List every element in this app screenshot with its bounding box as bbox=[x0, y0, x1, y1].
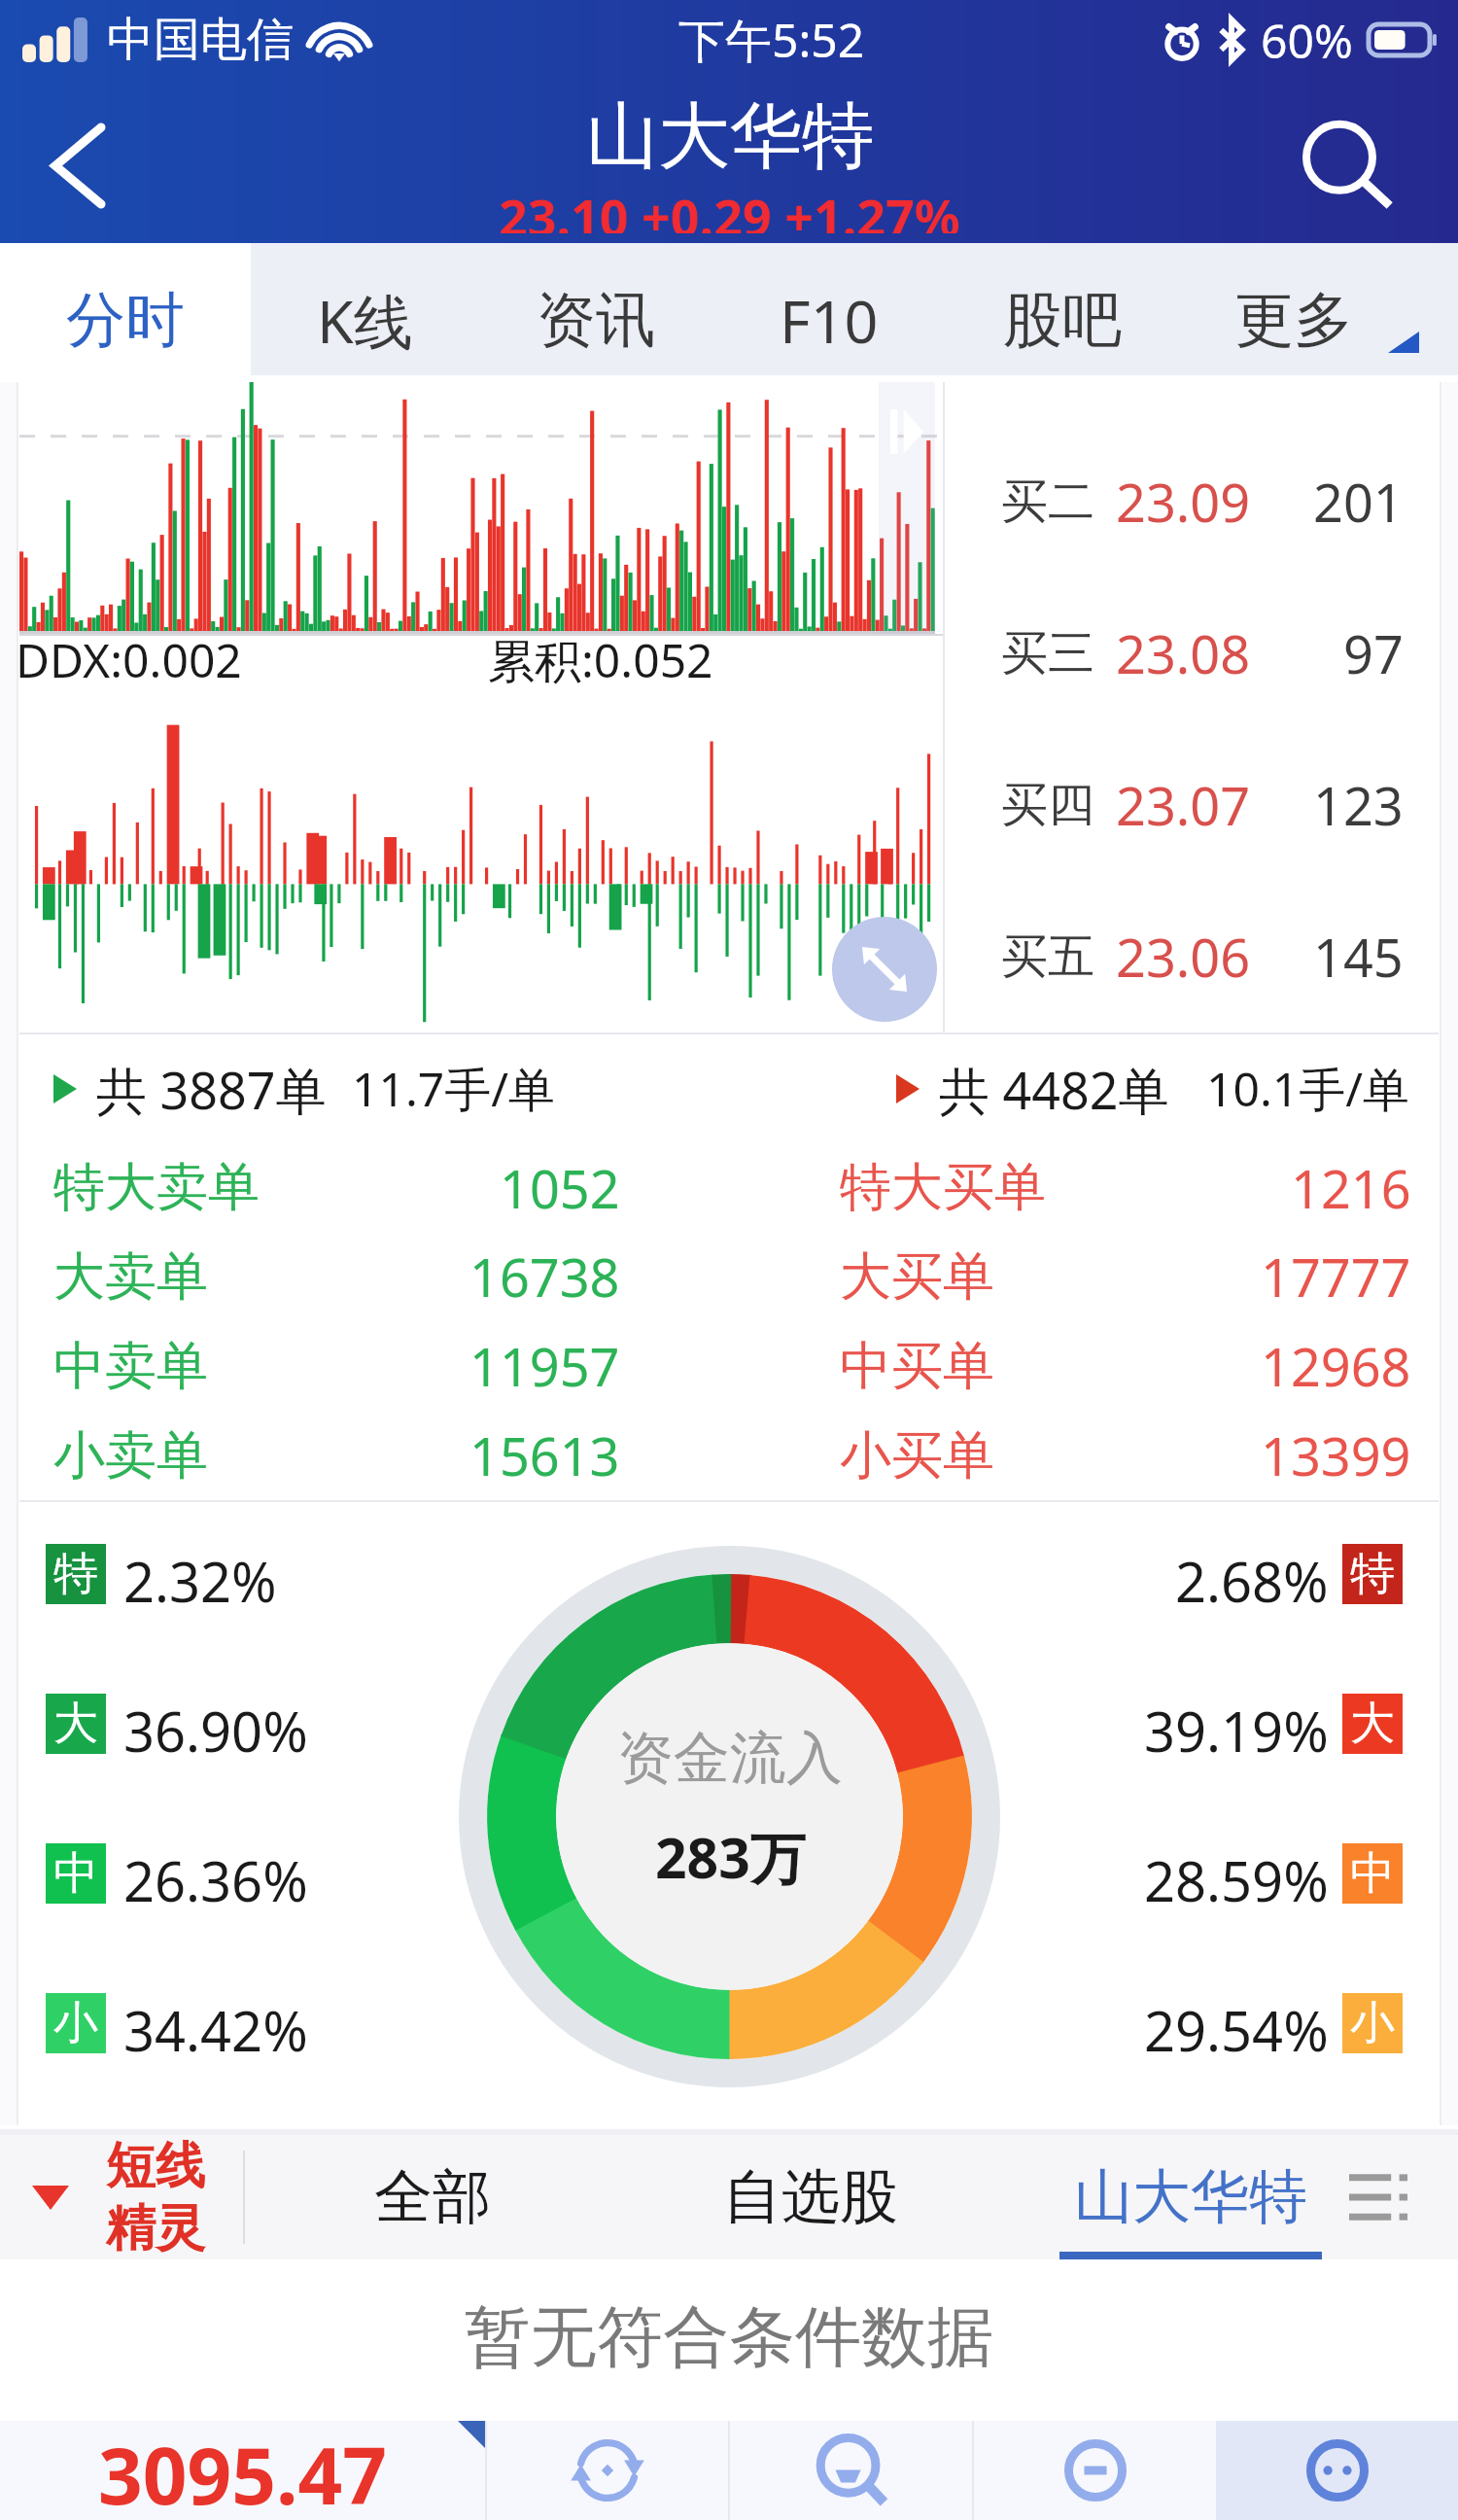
staticText: 283万 bbox=[655, 1819, 806, 1895]
button[interactable]: Refresh bbox=[487, 2421, 728, 2520]
staticText: 1216 bbox=[1291, 1152, 1411, 1224]
staticText: 3095.47 bbox=[98, 2421, 388, 2520]
button[interactable]: 大 bbox=[46, 1694, 308, 1754]
button[interactable]: More bbox=[1216, 2421, 1458, 2520]
staticText: 60% bbox=[1261, 9, 1353, 72]
staticText: 1052 bbox=[500, 1152, 620, 1224]
staticText: 34.42% bbox=[123, 1993, 308, 2053]
button[interactable]: 分时 bbox=[0, 251, 251, 390]
button[interactable]: 3095.47 bbox=[0, 2421, 485, 2520]
staticText: 26.36% bbox=[123, 1843, 308, 1904]
button[interactable]: 大卖单 bbox=[53, 1232, 620, 1321]
button[interactable]: 买四 bbox=[1001, 729, 1404, 881]
staticText: 中买单 bbox=[840, 1334, 994, 1399]
staticText: 特大卖单 bbox=[53, 1155, 260, 1220]
button[interactable]: 买五 bbox=[1001, 881, 1404, 1032]
button[interactable]: 买二 bbox=[1001, 426, 1404, 577]
staticText: 2.32% bbox=[123, 1544, 277, 1604]
staticText: 买五 bbox=[1001, 927, 1094, 986]
staticText: 股吧 bbox=[1003, 283, 1122, 358]
button[interactable]: 小卖单 bbox=[53, 1411, 620, 1500]
button[interactable]: 特大买单 bbox=[840, 1143, 1411, 1232]
button[interactable]: 自选股 bbox=[722, 2135, 899, 2259]
button[interactable]: 短线 bbox=[0, 2135, 245, 2259]
staticText: 201 bbox=[1313, 466, 1404, 538]
button[interactable]: 39.19% bbox=[1144, 1694, 1403, 1754]
staticText: 小买单 bbox=[840, 1423, 994, 1488]
button[interactable]: 中 bbox=[46, 1843, 308, 1904]
button[interactable]: 2.68% bbox=[1175, 1544, 1403, 1604]
button[interactable]: Expand chart bbox=[832, 917, 937, 1022]
staticText: 中卖单 bbox=[53, 1334, 208, 1399]
button[interactable]: 28.59% bbox=[1144, 1843, 1403, 1904]
staticText: 分时 bbox=[66, 283, 185, 358]
button[interactable]: 全部 bbox=[374, 2135, 491, 2259]
button[interactable]: 特 bbox=[46, 1544, 277, 1604]
staticText: 23.06 bbox=[1116, 921, 1251, 993]
button[interactable]: F10 bbox=[712, 251, 946, 390]
staticText: 中国电信 bbox=[107, 11, 294, 69]
staticText: 中 bbox=[1350, 1845, 1395, 1902]
staticText: 共 3887单 bbox=[96, 1055, 327, 1124]
button[interactable]: Search bbox=[1289, 109, 1411, 231]
staticText: 大买单 bbox=[840, 1244, 994, 1310]
staticText: 中 bbox=[53, 1845, 98, 1902]
staticText: 更多 bbox=[1234, 283, 1353, 358]
staticText: 39.19% bbox=[1144, 1694, 1329, 1754]
button[interactable]: 山大华特 bbox=[1059, 2135, 1322, 2259]
staticText: 36.90% bbox=[123, 1694, 308, 1754]
button[interactable]: 中买单 bbox=[840, 1321, 1411, 1411]
staticText: 累积:0.052 bbox=[488, 628, 713, 692]
staticText: 16738 bbox=[469, 1241, 620, 1312]
staticText: 大 bbox=[1350, 1696, 1395, 1752]
staticText: 资金流入 bbox=[617, 1723, 843, 1794]
button[interactable]: 更多 bbox=[1179, 251, 1458, 390]
button[interactable]: 大买单 bbox=[840, 1232, 1411, 1321]
staticText: DDX:0.002 bbox=[16, 628, 242, 691]
staticText: 暂无符合条件数据 bbox=[465, 2296, 993, 2380]
staticText: 23.09 bbox=[1116, 466, 1251, 538]
staticText: 23.10 +0.29 +1.27% bbox=[499, 182, 960, 233]
button[interactable]: Remove bbox=[974, 2421, 1216, 2520]
staticText: 资讯 bbox=[537, 283, 655, 358]
button[interactable]: 特大卖单 bbox=[53, 1143, 620, 1232]
staticText: 97 bbox=[1343, 617, 1404, 689]
staticText: 精灵 bbox=[106, 2197, 205, 2259]
staticText: 自选股 bbox=[723, 2160, 898, 2234]
staticText: 大卖单 bbox=[53, 1244, 208, 1310]
staticText: 17777 bbox=[1261, 1241, 1411, 1312]
staticText: 买三 bbox=[1001, 624, 1094, 682]
staticText: 小卖单 bbox=[53, 1423, 208, 1488]
staticText: 23.08 bbox=[1116, 617, 1251, 689]
staticText: 12968 bbox=[1261, 1330, 1411, 1402]
staticText: 23.07 bbox=[1116, 769, 1251, 841]
button[interactable]: 中卖单 bbox=[53, 1321, 620, 1411]
staticText: 特大买单 bbox=[840, 1155, 1046, 1220]
button[interactable]: 资讯 bbox=[479, 251, 712, 390]
staticText: 13399 bbox=[1261, 1419, 1411, 1491]
button[interactable]: Search bbox=[730, 2421, 972, 2520]
button[interactable]: 买三 bbox=[1001, 577, 1404, 729]
staticText: 短线 bbox=[106, 2135, 205, 2197]
staticText: 28.59% bbox=[1144, 1843, 1329, 1904]
button[interactable]: K线 bbox=[251, 251, 479, 390]
button[interactable]: Filter menu bbox=[1334, 2135, 1423, 2259]
staticText: 小 bbox=[1350, 1995, 1395, 2051]
button[interactable]: 29.54% bbox=[1144, 1993, 1403, 2053]
staticText: 山大华特 bbox=[586, 91, 874, 182]
button[interactable]: 小 bbox=[46, 1993, 308, 2053]
staticText: 11957 bbox=[469, 1330, 620, 1402]
staticText: 大 bbox=[53, 1696, 98, 1752]
staticText: K线 bbox=[317, 280, 413, 361]
staticText: F10 bbox=[780, 280, 879, 361]
staticText: 特 bbox=[1350, 1546, 1395, 1602]
staticText: 山大华特 bbox=[1074, 2160, 1307, 2234]
staticText: 下午5:52 bbox=[678, 8, 865, 72]
staticText: 买二 bbox=[1001, 472, 1094, 531]
staticText: 小 bbox=[53, 1995, 98, 2051]
button[interactable]: Back bbox=[23, 111, 132, 220]
staticText: 2.68% bbox=[1175, 1544, 1329, 1604]
staticText: 145 bbox=[1313, 921, 1404, 993]
button[interactable]: 小买单 bbox=[840, 1411, 1411, 1500]
button[interactable]: 股吧 bbox=[946, 251, 1179, 390]
